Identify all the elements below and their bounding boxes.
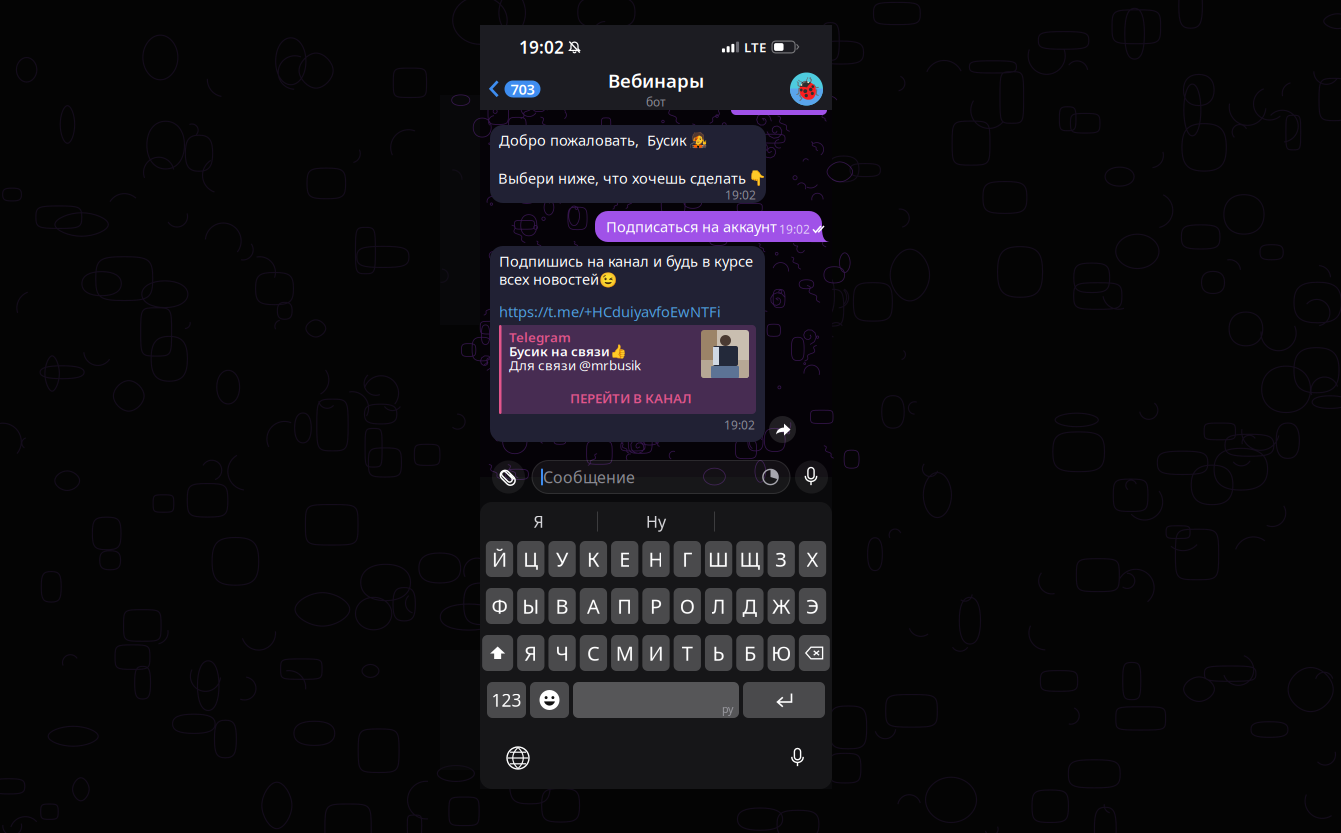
staticText: ПЕРЕЙТИ В КАНАЛ	[570, 389, 692, 407]
staticText: LTE	[744, 38, 766, 56]
button[interactable]: Х	[799, 541, 826, 577]
staticText: ру	[722, 702, 733, 716]
button[interactable]: Dictate	[791, 747, 805, 768]
staticText: Ж	[772, 593, 790, 619]
staticText: Т	[682, 640, 693, 666]
button[interactable]: Return	[743, 682, 825, 718]
staticText: https://t.me/+HCduiyavfoEwNTFi	[499, 302, 721, 321]
button[interactable]: Я	[517, 635, 544, 671]
button[interactable]: Shift	[482, 635, 513, 671]
staticText: Добро пожаловать, Бусик	[499, 130, 687, 150]
staticText: Г	[682, 546, 692, 572]
button[interactable]: А	[580, 588, 607, 624]
button[interactable]: Б	[736, 635, 763, 671]
button[interactable]: Backspace	[799, 635, 830, 671]
button[interactable]: Ю	[767, 635, 795, 671]
button[interactable]: Т	[674, 635, 701, 671]
staticText: Ы	[522, 593, 539, 619]
staticText: Э	[806, 593, 819, 619]
button[interactable]: Ы	[517, 588, 544, 624]
staticText: Ь	[713, 640, 725, 666]
staticText: Я	[533, 511, 543, 532]
button[interactable]: П	[611, 588, 638, 624]
button[interactable]: Space	[573, 682, 739, 718]
staticText: Для связи @mrbusik	[509, 356, 641, 374]
button[interactable]: ПЕРЕЙТИ В КАНАЛ	[509, 385, 753, 411]
staticText: В	[556, 593, 569, 619]
staticText: всех новостей😉	[499, 269, 617, 289]
staticText: Сообщение	[543, 466, 635, 488]
button[interactable]: Щ	[736, 541, 763, 577]
button[interactable]: Ф	[486, 588, 513, 624]
button[interactable]: Emoji	[530, 682, 569, 718]
staticText: Подписаться на аккаунт	[606, 217, 777, 236]
staticText: Вебинары	[608, 68, 704, 93]
staticText: 123	[491, 688, 521, 711]
button[interactable]: Ш	[705, 541, 732, 577]
button[interactable]: Attach	[492, 460, 525, 493]
button[interactable]: Ь	[705, 635, 732, 671]
staticText: 🧑‍🎤	[689, 132, 707, 148]
button[interactable]: К	[580, 541, 607, 577]
button[interactable]: З	[767, 541, 795, 577]
staticText: 19:02	[779, 221, 810, 237]
staticText: Х	[806, 546, 818, 572]
staticText: Ну	[646, 511, 666, 532]
staticText: П	[617, 593, 632, 619]
staticText: Ю	[771, 640, 791, 666]
button[interactable]: Д	[736, 588, 763, 624]
button[interactable]: Э	[799, 588, 826, 624]
button[interactable]: Ж	[767, 588, 795, 624]
staticText: С	[587, 640, 600, 666]
button[interactable]: С	[580, 635, 607, 671]
staticText: бот	[646, 94, 666, 110]
staticText: 19:02	[519, 35, 564, 58]
staticText: А	[587, 593, 600, 619]
staticText: К	[587, 546, 600, 572]
button[interactable]: М	[611, 635, 638, 671]
button[interactable]: Forward	[769, 416, 796, 443]
staticText: 19:02	[724, 417, 755, 433]
staticText: Ч	[556, 640, 569, 666]
button[interactable]: Й	[486, 541, 513, 577]
staticText: Выбери ниже, что хочешь сделать	[498, 168, 746, 188]
staticText: М	[616, 640, 634, 666]
button[interactable]: Ч	[548, 635, 576, 671]
button[interactable]: Н	[642, 541, 670, 577]
staticText: Ф	[491, 593, 507, 619]
staticText: 19:02	[725, 187, 756, 203]
staticText: Д	[742, 593, 757, 619]
staticText: Й	[492, 546, 507, 572]
button[interactable]: Switch keyboard	[507, 747, 529, 769]
button[interactable]: Л	[705, 588, 732, 624]
staticText: Н	[648, 546, 663, 572]
button[interactable]: Voice message	[795, 460, 828, 493]
staticText: Подпишись на канал и будь в курсе	[499, 251, 753, 271]
button[interactable]: Г	[674, 541, 701, 577]
staticText: Б	[744, 640, 756, 666]
staticText: Я	[524, 640, 537, 666]
button[interactable]: О	[674, 588, 701, 624]
button[interactable]: Chat info	[790, 70, 832, 107]
button[interactable]: Back	[480, 72, 540, 106]
staticText: У	[556, 546, 568, 572]
staticText: З	[775, 546, 787, 572]
button[interactable]: У	[548, 541, 576, 577]
button[interactable]: Ц	[517, 541, 544, 577]
staticText: Ш	[708, 546, 729, 572]
staticText: Ц	[523, 546, 538, 572]
button[interactable]: И	[642, 635, 670, 671]
staticText: Щ	[739, 546, 760, 572]
staticText: 🐞	[792, 76, 820, 102]
staticText: Бусик на связи👍	[509, 342, 627, 360]
staticText: О	[680, 593, 695, 619]
button[interactable]: В	[548, 588, 576, 624]
button[interactable]: Е	[611, 541, 638, 577]
staticText: Е	[619, 546, 630, 572]
staticText: Л	[712, 593, 726, 619]
button[interactable]: Р	[642, 588, 670, 624]
button[interactable]: 123	[487, 682, 526, 718]
staticText: 703	[510, 79, 534, 99]
staticText: Telegram	[509, 328, 571, 346]
staticText: Р	[650, 593, 662, 619]
